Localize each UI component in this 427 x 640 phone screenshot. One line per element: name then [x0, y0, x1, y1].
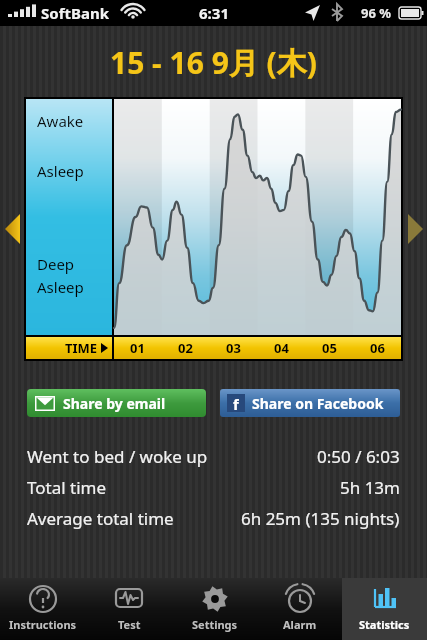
button[interactable]: Settings	[172, 578, 257, 640]
staticText: Asleep	[37, 161, 84, 181]
staticText: TIME	[65, 339, 98, 357]
staticText: Went to bed / woke up	[27, 445, 208, 468]
staticText: 03	[226, 339, 241, 357]
staticText: Awake	[37, 111, 84, 131]
staticText: Asleep	[37, 277, 84, 297]
staticText: 96 %	[361, 4, 391, 22]
button[interactable]: Previous night	[0, 97, 24, 361]
staticText: Total time	[27, 476, 107, 499]
staticText: Share by email	[63, 394, 166, 413]
staticText: 02	[178, 339, 193, 357]
staticText: 04	[274, 339, 289, 357]
staticText: Average total time	[27, 507, 174, 530]
staticText: Share on Facebook	[252, 394, 384, 413]
staticText: Instructions	[9, 617, 77, 632]
button[interactable]: Instructions	[0, 578, 86, 640]
staticText: 06	[370, 339, 385, 357]
staticText: 01	[130, 339, 145, 357]
staticText: 0:50 / 6:03	[317, 445, 400, 468]
button[interactable]: Statistics	[342, 578, 427, 640]
staticText: Alarm	[283, 617, 317, 632]
staticText: Deep	[37, 254, 75, 274]
staticText: Settings	[192, 617, 238, 632]
staticText: f	[233, 394, 239, 412]
button[interactable]: Next night	[403, 97, 427, 361]
staticText: 5h 13m	[340, 476, 400, 499]
staticText: 6:31	[199, 3, 229, 23]
staticText: Test	[118, 617, 141, 632]
button[interactable]: Alarm	[257, 578, 342, 640]
button[interactable]: Test	[86, 578, 172, 640]
staticText: Statistics	[359, 617, 410, 632]
button[interactable]: f	[220, 389, 400, 417]
staticText: 6h 25m (135 nights)	[241, 507, 400, 530]
button[interactable]: Share by email	[27, 389, 206, 417]
staticText: 05	[322, 339, 337, 357]
staticText: SoftBank	[41, 3, 109, 23]
staticText: 15 - 16 9月 (木)	[110, 42, 317, 83]
